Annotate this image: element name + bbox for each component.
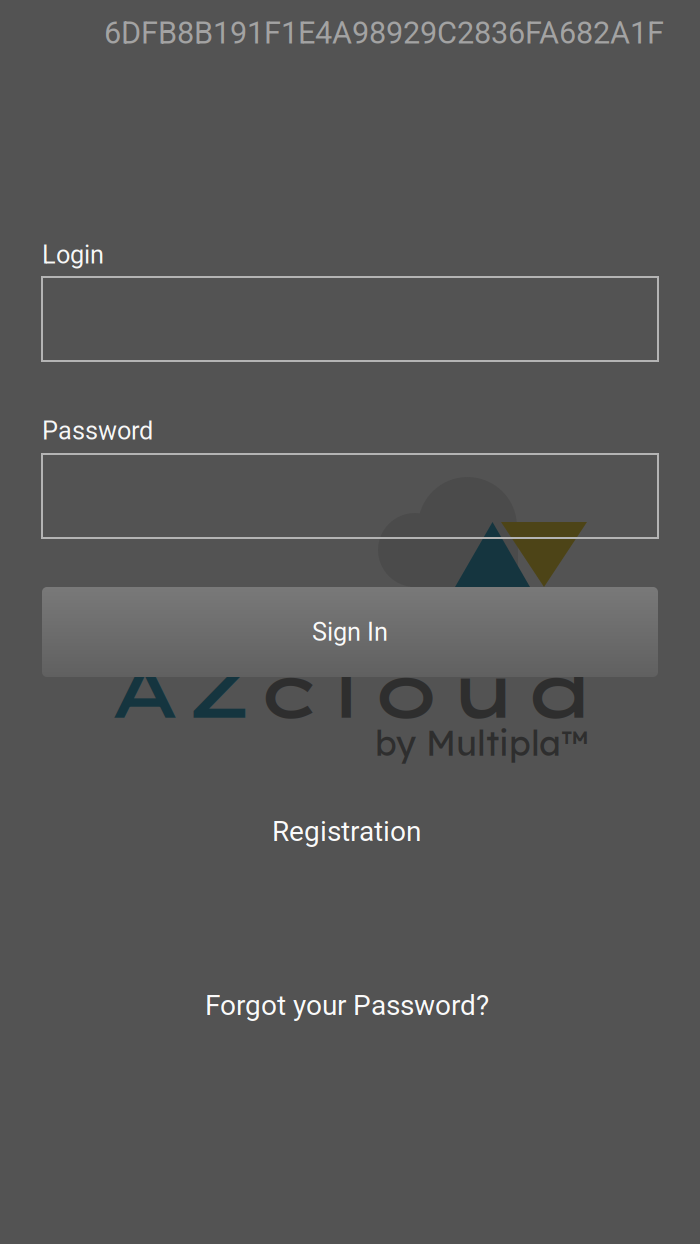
button[interactable] [42, 277, 658, 361]
staticText: Password [42, 416, 153, 446]
staticText: Sign In [312, 617, 388, 647]
staticText: cloud [256, 643, 597, 736]
button[interactable]: Forgot your Password? [189, 979, 505, 1032]
staticText: 6DFB8B191F1E4A98929C2836FA682A1F [104, 15, 664, 51]
button[interactable]: Sign In [42, 587, 658, 677]
staticText: by Multipla™ [375, 721, 589, 764]
button[interactable] [42, 454, 658, 538]
button[interactable]: Registration [256, 805, 437, 858]
staticText: Registration [272, 815, 421, 848]
staticText: AZ [108, 643, 253, 736]
staticText: Forgot your Password? [205, 989, 489, 1022]
staticText: Login [42, 240, 104, 270]
